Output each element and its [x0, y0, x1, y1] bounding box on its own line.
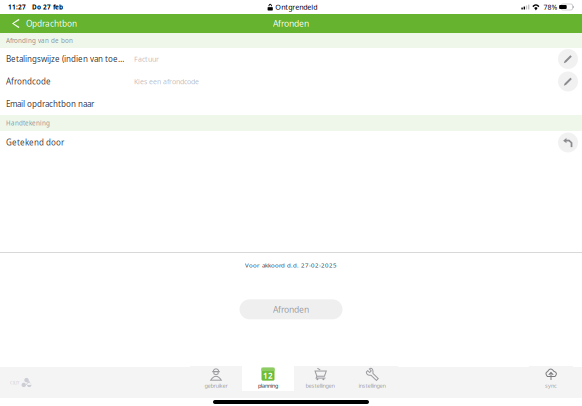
button[interactable]: Opdrachtbon: [0, 14, 85, 33]
staticText: Afrondcode: [6, 76, 51, 87]
staticText: Afronden: [273, 303, 309, 315]
staticText: CILIT: [10, 380, 19, 385]
staticText: sync: [545, 382, 557, 389]
staticText: 11:27: [8, 3, 26, 11]
staticText: gebruiker: [204, 382, 227, 389]
staticText: Handtekening: [6, 119, 50, 127]
staticText: Do 27 feb: [32, 3, 63, 11]
button[interactable]: Email opdrachtbon naar: [0, 94, 582, 114]
staticText: Ontgrendeld: [275, 2, 317, 12]
staticText: Email opdrachtbon naar: [6, 99, 94, 109]
staticText: planning: [258, 382, 278, 389]
staticText: instellingen: [358, 382, 385, 389]
staticText: Opdrachtbon: [26, 18, 77, 29]
staticText: Betalingswijze (indien van toe…: [6, 54, 124, 64]
button[interactable]: Afronden: [239, 299, 342, 319]
staticText: Afronding van de bon: [6, 36, 73, 45]
button[interactable]: instellingen: [346, 366, 398, 391]
staticText: bestellingen: [305, 382, 334, 389]
button[interactable]: Afrondcode: [0, 71, 582, 91]
button[interactable]: Getekend door: [0, 132, 582, 152]
staticText: 12: [263, 370, 273, 381]
staticText: Getekend door: [6, 137, 64, 148]
staticText: Voor akkoord d.d. 27-02-2025: [245, 261, 337, 269]
button[interactable]: 12: [242, 366, 294, 391]
button[interactable]: Betalingswijze (indien van toe…: [0, 49, 582, 69]
button[interactable]: sync: [529, 366, 573, 391]
staticText: Factuur: [134, 54, 159, 64]
button[interactable]: bestellingen: [294, 366, 346, 391]
staticText: 78%: [543, 2, 557, 12]
button[interactable]: gebruiker: [190, 366, 242, 391]
staticText: Kies een afrondcode: [134, 77, 199, 86]
staticText: Afronden: [273, 18, 309, 29]
